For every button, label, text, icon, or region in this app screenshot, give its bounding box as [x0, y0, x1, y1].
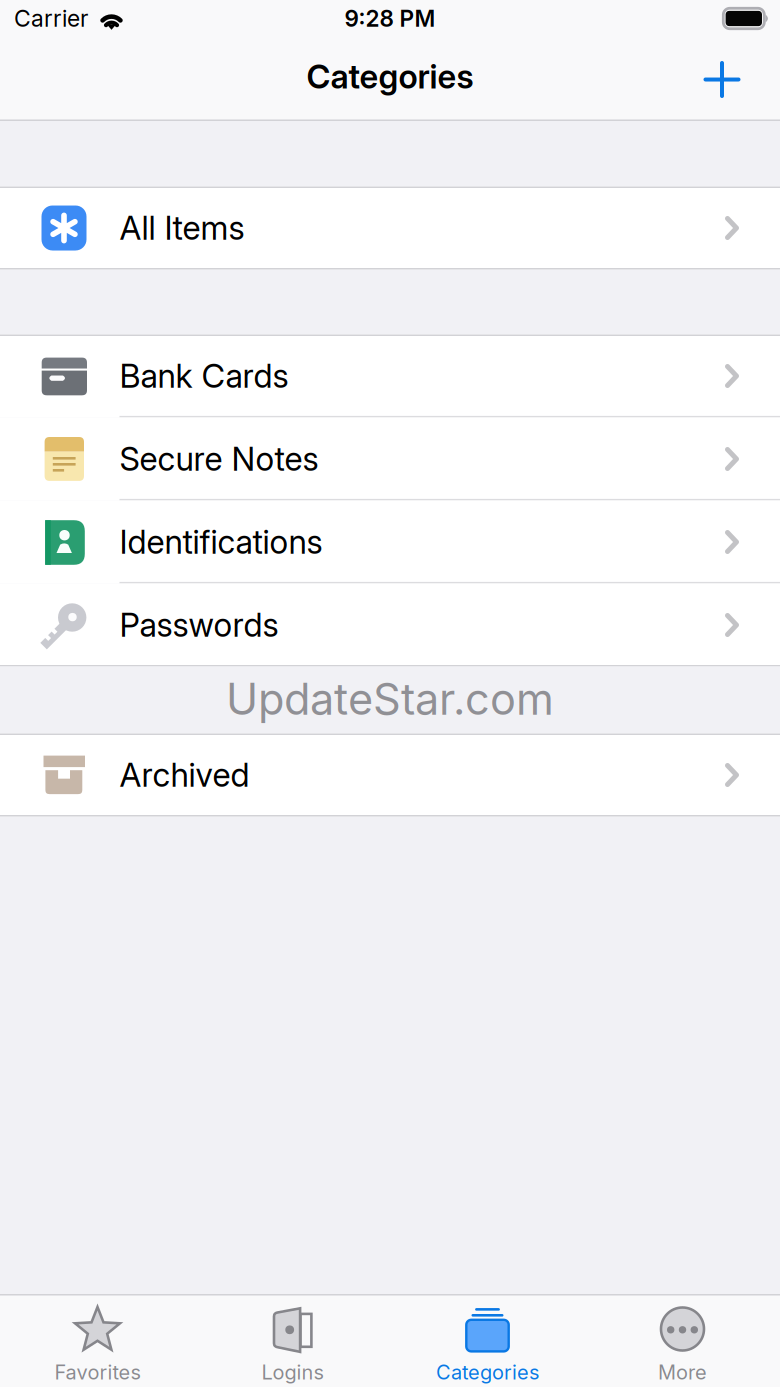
- staticText: 9:28 PM: [344, 5, 435, 32]
- staticText: Categories: [306, 57, 473, 96]
- staticText: Favorites: [54, 1360, 140, 1384]
- staticText: Archived: [119, 755, 249, 795]
- staticText: Logins: [261, 1360, 323, 1384]
- button[interactable]: Categories: [390, 1294, 585, 1387]
- staticText: Bank Cards: [119, 356, 288, 396]
- button[interactable]: Archived: [0, 733, 780, 816]
- button[interactable]: All Items: [0, 186, 780, 269]
- staticText: All Items: [119, 208, 244, 248]
- button[interactable]: Identifications: [0, 500, 780, 583]
- staticText: Identifications: [119, 522, 322, 562]
- button[interactable]: Bank Cards: [0, 334, 780, 417]
- staticText: Passwords: [119, 605, 278, 645]
- staticText: UpdateStar.com: [226, 673, 554, 725]
- staticText: More: [658, 1360, 707, 1384]
- button[interactable]: Passwords: [0, 583, 780, 666]
- button[interactable]: Add: [694, 51, 750, 107]
- button[interactable]: More: [585, 1294, 780, 1387]
- button[interactable]: Logins: [195, 1294, 390, 1387]
- staticText: Carrier: [14, 5, 88, 32]
- staticText: Secure Notes: [119, 439, 318, 479]
- staticText: Categories: [436, 1360, 539, 1384]
- button[interactable]: Secure Notes: [0, 417, 780, 500]
- button[interactable]: Favorites: [0, 1294, 195, 1387]
